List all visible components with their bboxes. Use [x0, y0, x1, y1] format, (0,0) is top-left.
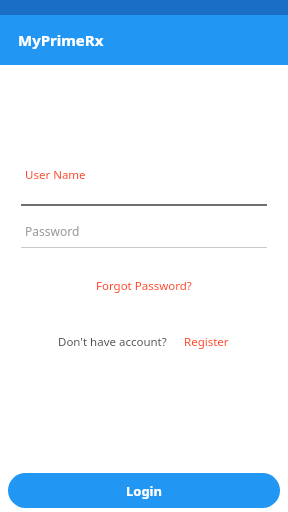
- button[interactable]: Register: [182, 331, 231, 353]
- staticText: Password: [25, 223, 80, 239]
- button[interactable]: Login: [8, 473, 280, 508]
- button[interactable]: User Name: [0, 167, 288, 206]
- button[interactable]: Password: [0, 223, 288, 248]
- staticText: Don't have account?: [58, 334, 167, 350]
- staticText: User Name: [25, 167, 86, 183]
- staticText: Login: [126, 482, 162, 500]
- staticText: MyPrimeRx: [18, 30, 104, 50]
- button[interactable]: Forgot Password?: [90, 275, 198, 297]
